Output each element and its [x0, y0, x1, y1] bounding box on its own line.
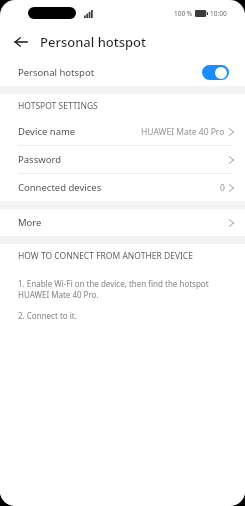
- button[interactable]: Password: [0, 146, 245, 173]
- staticText: 1. Enable Wi-Fi on the device, then find…: [18, 278, 229, 301]
- staticText: Personal hotspot: [40, 33, 147, 51]
- staticText: 10:00: [210, 9, 227, 18]
- staticText: 100 %: [174, 9, 193, 18]
- staticText: Connected devices: [18, 181, 102, 194]
- staticText: Device name: [18, 125, 76, 138]
- button[interactable]: Connected devices: [0, 174, 245, 201]
- button[interactable]: Device name: [0, 118, 245, 145]
- staticText: HOTSPOT SETTINGS: [18, 100, 98, 112]
- button[interactable]: More: [0, 209, 245, 236]
- button[interactable]: Back: [10, 31, 32, 53]
- staticText: HUAWEI Mate 40 Pro: [141, 126, 225, 138]
- staticText: More: [18, 216, 42, 229]
- button[interactable]: Personal hotspot: [0, 58, 245, 86]
- staticText: Password: [18, 153, 61, 166]
- staticText: 0: [220, 182, 225, 194]
- staticText: 2. Connect to it.: [18, 310, 77, 321]
- staticText: HOW TO CONNECT FROM ANOTHER DEVICE: [18, 250, 193, 262]
- staticText: Personal hotspot: [18, 66, 95, 79]
